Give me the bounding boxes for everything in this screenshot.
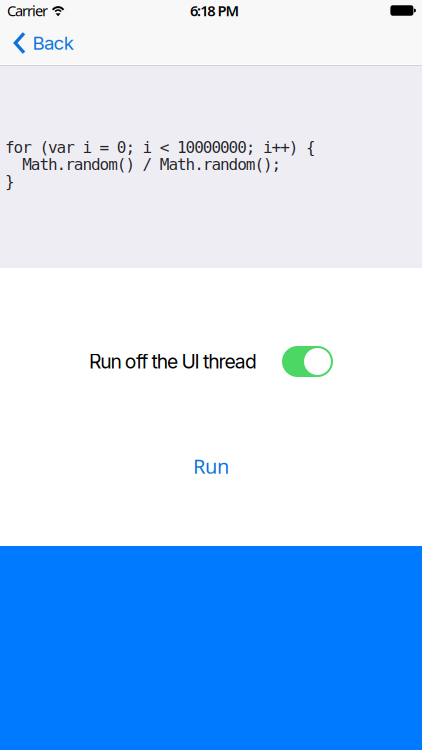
button[interactable]: Back <box>0 20 86 65</box>
staticText: 6:18 PM <box>190 1 240 20</box>
staticText: Run <box>193 453 229 479</box>
staticText: Math.random() / Math.random(); <box>5 155 282 174</box>
staticText: Run off the UI thread <box>89 350 257 373</box>
staticText: Carrier <box>7 1 48 20</box>
button[interactable]: Run off the UI thread <box>282 346 333 377</box>
button[interactable]: Run <box>0 455 422 477</box>
staticText: Back <box>32 32 74 54</box>
staticText: for (var i = 0; i < 10000000; i++) { <box>5 138 316 157</box>
staticText: } <box>5 172 15 191</box>
